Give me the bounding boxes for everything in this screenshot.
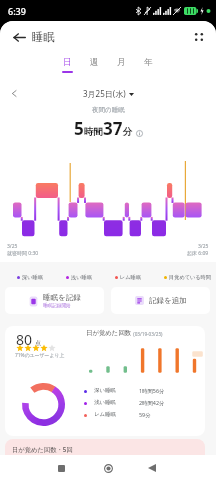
staticText: 記録を追加 (149, 296, 187, 305)
button[interactable]: Home (96, 456, 120, 480)
staticText: 年 (144, 57, 153, 68)
staticText: 睡眠記録開始 (43, 303, 71, 309)
staticText: 睡眠 (32, 30, 55, 44)
staticText: 時間 (84, 126, 103, 138)
button[interactable]: Previous day (6, 85, 22, 101)
staticText: 浅い睡眠 (71, 274, 92, 281)
staticText: 起床 6:09 (187, 250, 209, 257)
button[interactable]: 睡眠を記録 (5, 287, 104, 314)
staticText: 週 (90, 57, 99, 68)
staticText: 3/25 (7, 243, 18, 250)
staticText: 59分 (139, 411, 151, 418)
staticText: (03/19-03/25) (132, 331, 163, 337)
staticText: 浅い睡眠 (94, 399, 116, 406)
staticText: 夜間の睡眠 (92, 106, 125, 114)
staticText: 睡眠を記録 (43, 293, 81, 302)
staticText: レム睡眠 (120, 274, 141, 281)
button[interactable]: Back (140, 456, 164, 480)
button[interactable]: 記録を追加 (111, 287, 210, 314)
staticText: 深い睡眠 (94, 387, 116, 394)
staticText: 点 (35, 339, 41, 347)
button[interactable]: 80 (5, 326, 205, 436)
staticText: 日 (63, 57, 72, 68)
button[interactable]: 日 (54, 57, 81, 81)
button[interactable]: More options (188, 26, 210, 48)
staticText: 月 (117, 57, 126, 68)
button[interactable]: Recents (49, 456, 73, 480)
button[interactable]: Back (8, 26, 30, 48)
button[interactable]: 年 (135, 57, 162, 81)
staticText: 日が覚めた回数・5回 (12, 445, 73, 454)
button[interactable]: 週 (81, 57, 108, 81)
staticText: 深い睡眠 (22, 274, 43, 281)
staticText: 就寝時間 0:30 (7, 250, 39, 257)
staticText: 1時間56分 (139, 387, 165, 394)
staticText: 71%のユーザーより上 (15, 352, 65, 359)
staticText: 3月25日(水) (83, 88, 126, 99)
staticText: 日が覚めた回数 (86, 329, 132, 337)
staticText: 分 (123, 126, 133, 138)
staticText: 37 (103, 117, 123, 140)
staticText: 80 (16, 330, 33, 349)
button[interactable]: 月 (108, 57, 135, 81)
staticText: 5 (74, 117, 84, 140)
staticText: 目覚めている時間 (169, 274, 211, 281)
staticText: 6:39 (8, 5, 26, 17)
button[interactable]: 3月25日(水) (83, 88, 134, 99)
staticText: 2時間42分 (139, 399, 165, 406)
staticText: 3/25 (198, 243, 209, 250)
staticText: レム睡眠 (94, 411, 116, 418)
